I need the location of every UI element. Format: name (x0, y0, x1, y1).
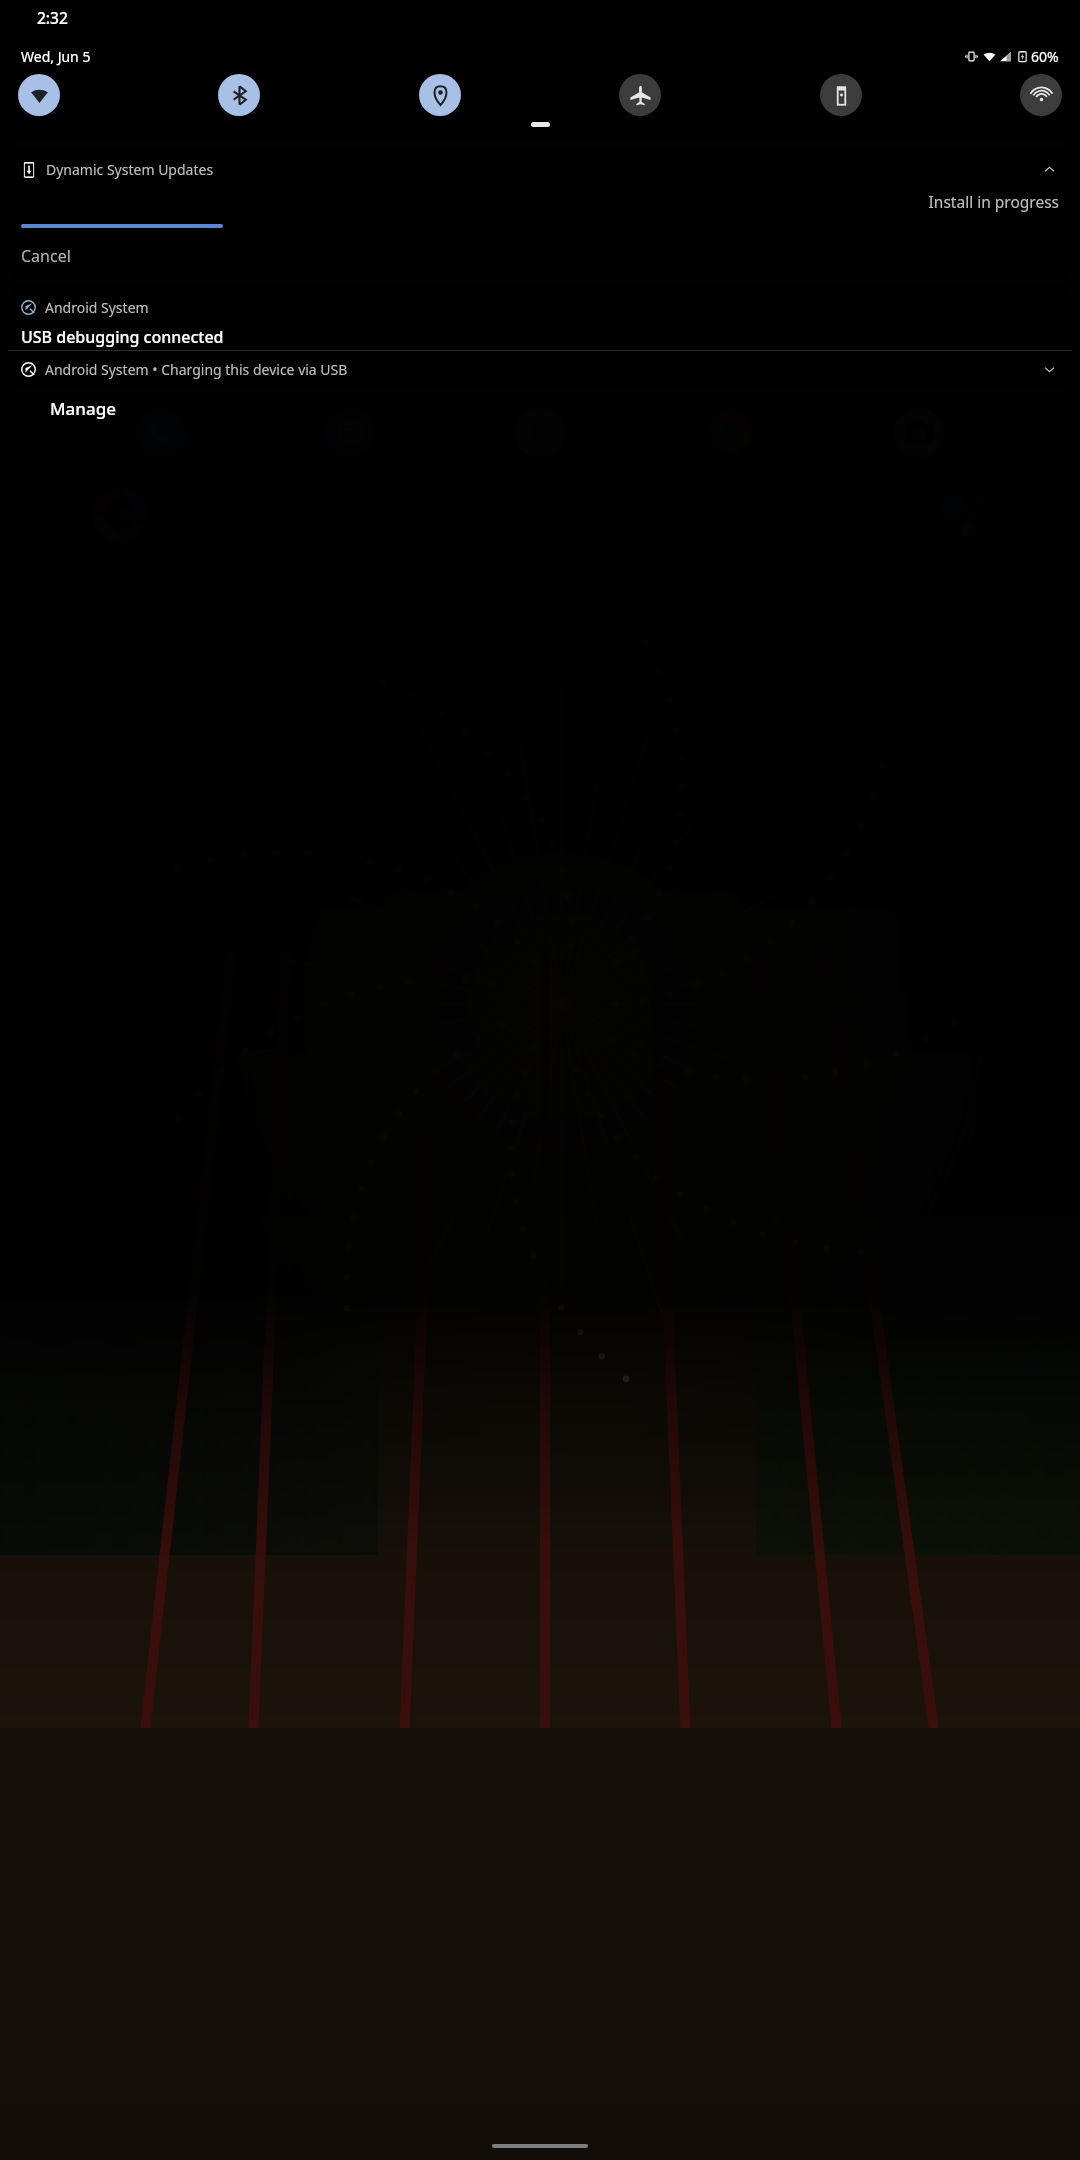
staticText: 2:32 (37, 7, 68, 28)
staticText: Dynamic System Updates (46, 160, 214, 179)
staticText: Manage (50, 397, 117, 420)
button[interactable]: Gmail (507, 327, 573, 400)
button[interactable]: Bluetooth (218, 74, 260, 116)
button[interactable]: Bible (317, 327, 383, 400)
button[interactable]: Cancel (8, 243, 1072, 269)
button[interactable]: Manage (50, 397, 117, 420)
button[interactable]: Cast (1020, 74, 1062, 116)
button[interactable]: Location (419, 74, 461, 116)
button[interactable]: Spotify (697, 327, 763, 400)
staticText: USB debugging connected (21, 326, 224, 348)
button[interactable]: Boost (128, 327, 194, 400)
staticText: Cancel (21, 245, 71, 267)
button[interactable]: Flashlight (820, 74, 862, 116)
button[interactable]: Android System (8, 285, 1072, 349)
staticText: Android System (45, 298, 149, 317)
button[interactable]: Android System • Charging this device vi… (8, 351, 1072, 388)
button[interactable]: Airplane mode (619, 74, 661, 116)
staticText: Install in progress (8, 191, 1059, 212)
button[interactable]: Dynamic System Updates (8, 146, 1072, 280)
button[interactable]: Expand (1040, 360, 1059, 379)
button[interactable]: Slack (886, 327, 952, 400)
button[interactable]: Collapse (1040, 160, 1059, 179)
staticText: Wed, Jun 5 (21, 47, 91, 66)
staticText: Android System • Charging this device vi… (45, 360, 348, 379)
button[interactable]: Wi-Fi (18, 74, 60, 116)
staticText: 60% (1031, 47, 1059, 66)
